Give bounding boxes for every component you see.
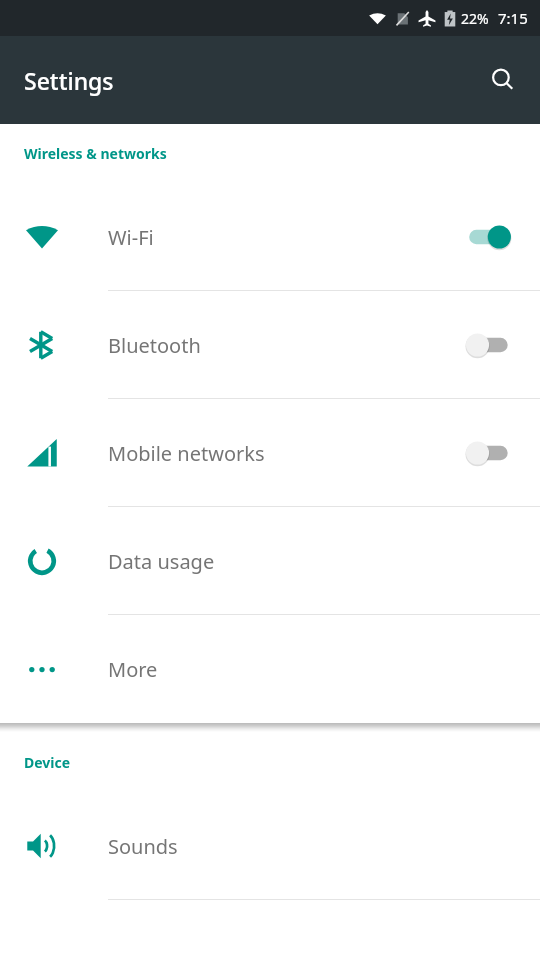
staticText: Settings	[24, 65, 114, 96]
staticText: Bluetooth	[108, 332, 201, 359]
staticText: Sounds	[108, 833, 178, 860]
staticText: Data usage	[108, 548, 215, 575]
button[interactable]: Wi-Fi switch	[462, 217, 518, 257]
staticText: More	[108, 656, 158, 683]
staticText: Device	[24, 753, 71, 772]
staticText: 7:15	[498, 8, 528, 28]
staticText: 22%	[461, 9, 489, 28]
button[interactable]: Data usage	[0, 507, 540, 615]
button[interactable]: Bluetooth switch	[462, 325, 518, 365]
staticText: Wireless & networks	[24, 144, 167, 163]
staticText: Mobile networks	[108, 440, 265, 467]
button[interactable]: Mobile networks switch	[462, 433, 518, 473]
button[interactable]: Sounds	[0, 792, 540, 900]
button[interactable]: Mobile networks	[0, 399, 540, 507]
staticText: Wi-Fi	[108, 224, 154, 251]
button[interactable]: Bluetooth	[0, 291, 540, 399]
button[interactable]: More	[0, 615, 540, 723]
button[interactable]: Wi-Fi	[0, 183, 540, 291]
button[interactable]: Search	[479, 56, 527, 104]
